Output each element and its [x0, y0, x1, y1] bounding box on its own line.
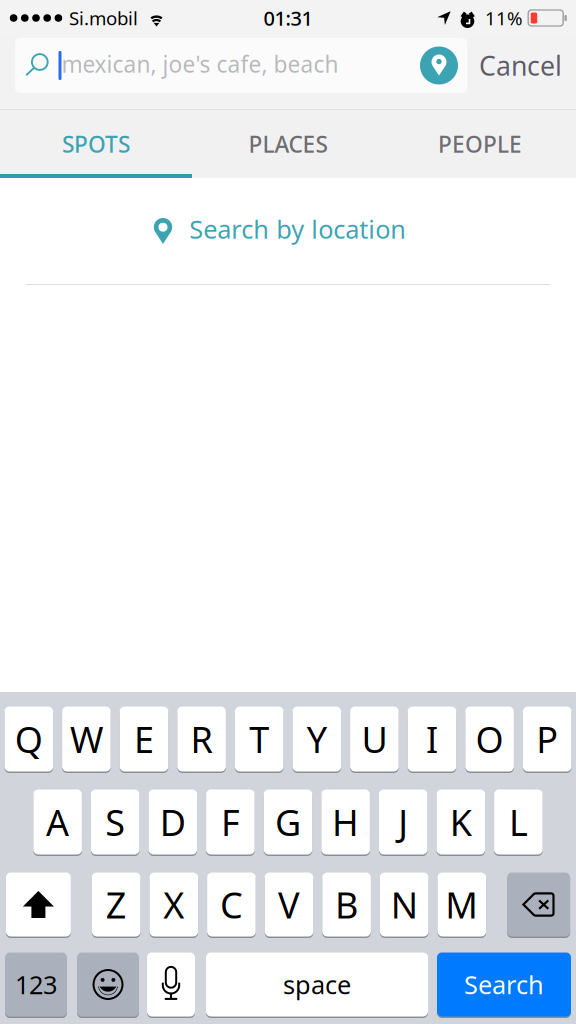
button[interactable]: W	[62, 706, 111, 773]
button[interactable]: SPOTS	[0, 110, 192, 178]
staticText: P	[536, 715, 558, 763]
staticText: mexican, joe's cafe, beach	[61, 49, 338, 79]
button[interactable]: A	[33, 789, 82, 856]
button[interactable]: Q	[4, 706, 53, 773]
staticText: O	[476, 715, 504, 763]
staticText: W	[70, 715, 103, 763]
button[interactable]: C	[207, 872, 256, 938]
button[interactable]: space	[206, 952, 428, 1018]
staticText: A	[46, 798, 69, 846]
button[interactable]: Search by location	[0, 178, 576, 284]
staticText: J	[398, 798, 408, 846]
button[interactable]: 123	[5, 952, 67, 1018]
staticText: Cancel	[479, 48, 562, 83]
staticText: S	[105, 798, 125, 846]
button[interactable]: Dictation	[147, 952, 195, 1018]
staticText: M	[445, 881, 478, 928]
button[interactable]: E	[120, 706, 168, 773]
button[interactable]: N	[380, 872, 428, 938]
staticText: space	[283, 968, 351, 1001]
staticText: B	[335, 881, 358, 928]
staticText: E	[134, 715, 154, 763]
staticText: V	[278, 881, 300, 928]
staticText: I	[426, 715, 438, 763]
button[interactable]: R	[177, 706, 226, 773]
staticText: Q	[15, 715, 43, 763]
button[interactable]: G	[264, 789, 312, 856]
button[interactable]: I	[408, 706, 456, 773]
staticText: G	[275, 798, 301, 846]
staticText: 123	[15, 968, 57, 1001]
staticText: X	[163, 881, 184, 928]
staticText: Search by location	[189, 212, 406, 246]
button[interactable]: Emoji	[77, 952, 139, 1018]
staticText: H	[332, 798, 359, 846]
staticText: R	[191, 715, 213, 763]
button[interactable]: PEOPLE	[384, 110, 576, 178]
button[interactable]: K	[436, 789, 485, 856]
button[interactable]: U	[350, 706, 399, 773]
staticText: 01:31	[263, 5, 312, 31]
staticText: U	[361, 715, 387, 763]
staticText: C	[220, 881, 243, 928]
button[interactable]: B	[322, 872, 371, 938]
button[interactable]: V	[265, 872, 313, 938]
staticText: Si.mobil	[69, 6, 138, 30]
button[interactable]: Y	[292, 706, 341, 773]
button[interactable]: Search by location	[420, 46, 467, 84]
staticText: PLACES	[248, 129, 327, 159]
staticText: D	[160, 798, 186, 846]
staticText: Y	[307, 715, 327, 763]
button[interactable]: D	[148, 789, 197, 856]
button[interactable]: Search	[437, 952, 571, 1018]
staticText: K	[450, 798, 472, 846]
button[interactable]: M	[437, 872, 486, 938]
staticText: Search	[464, 968, 544, 1001]
button[interactable]: Z	[92, 872, 140, 938]
button[interactable]: PLACES	[192, 110, 384, 178]
button[interactable]: H	[321, 789, 370, 856]
button[interactable]: Delete	[507, 872, 570, 938]
button[interactable]: P	[523, 706, 571, 773]
button[interactable]: S	[91, 789, 139, 856]
button[interactable]: Cancel	[469, 36, 572, 95]
staticText: N	[391, 881, 418, 928]
button[interactable]: L	[494, 789, 543, 856]
staticText: F	[221, 798, 240, 846]
staticText: SPOTS	[62, 129, 130, 159]
button[interactable]: O	[465, 706, 514, 773]
staticText: PEOPLE	[438, 129, 522, 159]
staticText: 11%	[485, 6, 523, 30]
button[interactable]: F	[206, 789, 255, 856]
button[interactable]: Shift	[6, 872, 71, 938]
staticText: T	[249, 715, 269, 763]
button[interactable]: J	[379, 789, 427, 856]
button[interactable]: X	[149, 872, 198, 938]
button[interactable]: T	[235, 706, 283, 773]
staticText: L	[509, 798, 528, 846]
staticText: Z	[106, 881, 127, 928]
